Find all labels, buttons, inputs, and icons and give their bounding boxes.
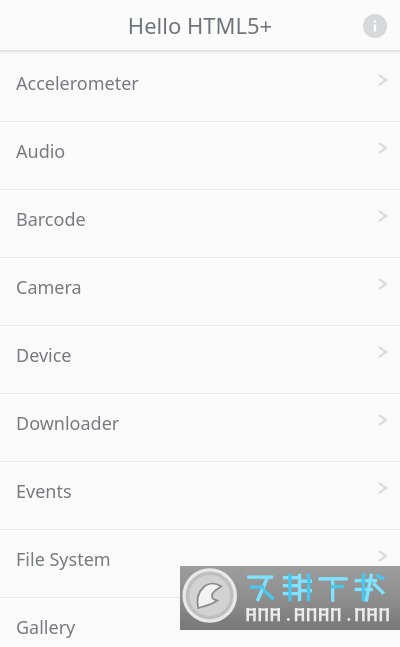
button[interactable]: Info [361, 12, 389, 40]
staticText: Barcode [16, 207, 86, 232]
staticText: Events [16, 479, 72, 504]
staticText: File System [16, 547, 111, 572]
button[interactable]: Device [0, 326, 400, 394]
staticText: Downloader [16, 411, 120, 436]
button[interactable]: Events [0, 462, 400, 530]
button[interactable]: Gallery [0, 598, 400, 647]
staticText: Camera [16, 275, 82, 300]
staticText: Audio [16, 139, 66, 164]
staticText: Hello HTML5+ [0, 10, 400, 40]
staticText: Device [16, 343, 72, 368]
button[interactable]: Camera [0, 258, 400, 326]
staticText: Accelerometer [16, 71, 139, 96]
button[interactable]: Downloader [0, 394, 400, 462]
button[interactable]: File System [0, 530, 400, 598]
staticText: Gallery [16, 615, 76, 640]
button[interactable]: Audio [0, 122, 400, 190]
button[interactable]: Accelerometer [0, 54, 400, 122]
button[interactable]: Barcode [0, 190, 400, 258]
